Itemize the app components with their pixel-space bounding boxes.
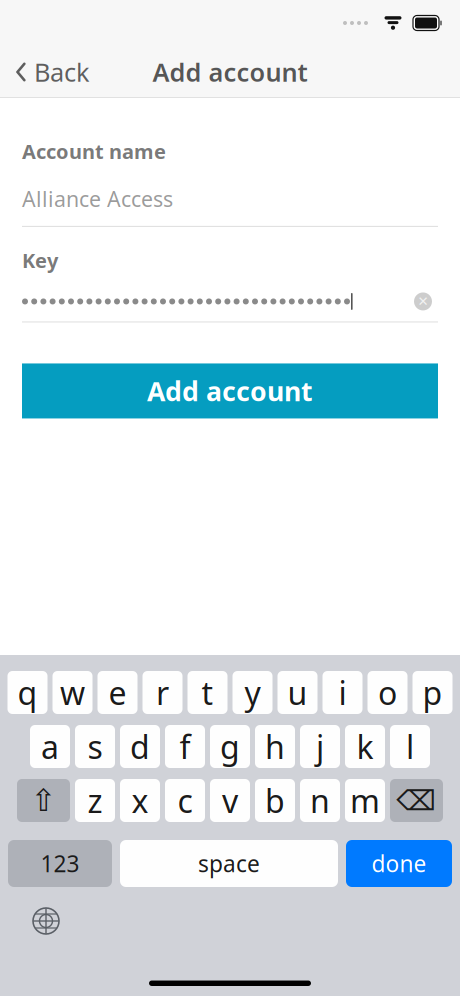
staticText: Back [34, 55, 90, 89]
button[interactable]: p [412, 671, 452, 714]
button[interactable]: w [52, 671, 92, 714]
button[interactable]: y [232, 671, 272, 714]
staticText: e [108, 671, 126, 714]
staticText: g [220, 725, 240, 768]
button[interactable]: s [75, 725, 115, 768]
staticText: ⇧ [30, 783, 56, 818]
staticText: Account name [22, 138, 166, 165]
staticText: Alliance Access [22, 185, 173, 213]
button[interactable]: g [210, 725, 250, 768]
button[interactable]: done [346, 840, 452, 887]
staticText: z [87, 779, 102, 822]
staticText: a [41, 725, 59, 768]
button[interactable]: f [165, 725, 205, 768]
button[interactable]: x [120, 779, 160, 822]
staticText: y [244, 671, 260, 714]
button[interactable]: c [165, 779, 205, 822]
staticText: u [287, 671, 307, 714]
button[interactable]: Clear key [408, 286, 438, 316]
button[interactable]: b [255, 779, 295, 822]
staticText: Add account [152, 55, 307, 89]
staticText: b [265, 779, 285, 822]
button[interactable]: Back [0, 47, 100, 97]
staticText: r [156, 671, 169, 714]
staticText: ✕ [417, 294, 428, 309]
staticText: v [222, 779, 238, 822]
staticText: s [87, 725, 102, 768]
button[interactable]: z [75, 779, 115, 822]
button[interactable]: r [142, 671, 182, 714]
staticText: h [265, 725, 285, 768]
button[interactable]: q [7, 671, 47, 714]
staticText: p [422, 671, 442, 714]
staticText: j [316, 725, 324, 768]
button[interactable]: Shift [17, 779, 70, 822]
staticText: l [406, 725, 414, 768]
staticText: Add account [147, 373, 313, 409]
staticText: q [17, 671, 37, 714]
button[interactable]: u [277, 671, 317, 714]
staticText: Key [22, 247, 58, 273]
staticText: k [356, 725, 373, 768]
button[interactable]: h [255, 725, 295, 768]
button[interactable]: space [120, 840, 338, 887]
staticText: i [338, 671, 346, 714]
staticText: w [60, 671, 85, 714]
button[interactable]: d [120, 725, 160, 768]
staticText: t [201, 671, 213, 714]
staticText: 123 [40, 848, 79, 878]
button[interactable]: Add account [22, 363, 438, 418]
staticText: c [177, 779, 192, 822]
button[interactable]: m [345, 779, 385, 822]
button[interactable]: n [300, 779, 340, 822]
staticText: x [131, 779, 148, 822]
button[interactable]: a [30, 725, 70, 768]
button[interactable]: i [322, 671, 362, 714]
staticText: n [310, 779, 330, 822]
staticText: ⌫ [396, 785, 436, 816]
button[interactable]: k [345, 725, 385, 768]
button[interactable]: l [390, 725, 430, 768]
button[interactable]: o [367, 671, 407, 714]
staticText: o [378, 671, 397, 714]
button[interactable]: t [187, 671, 227, 714]
staticText: d [130, 725, 150, 768]
staticText: space [198, 848, 260, 878]
button[interactable]: j [300, 725, 340, 768]
button[interactable]: Delete [390, 779, 443, 822]
button[interactable]: e [97, 671, 137, 714]
staticText: f [179, 725, 190, 768]
button[interactable]: 123 [8, 840, 112, 887]
staticText: done [371, 848, 426, 878]
button[interactable]: Change keyboard [24, 899, 68, 943]
button[interactable]: v [210, 779, 250, 822]
staticText: m [350, 779, 380, 822]
